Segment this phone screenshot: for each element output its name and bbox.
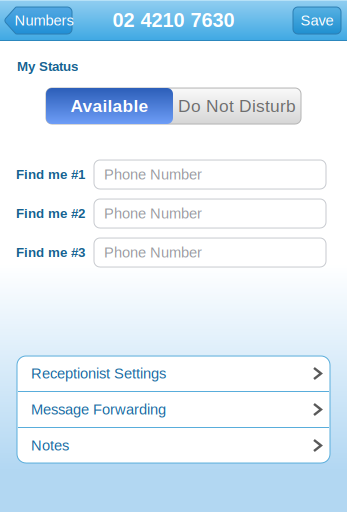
button[interactable]: Receptionist Settings <box>17 356 330 391</box>
staticText: Available <box>70 96 148 116</box>
button[interactable]: Notes <box>17 428 330 463</box>
button[interactable]: Available <box>46 88 173 124</box>
staticText: Numbers <box>14 12 73 29</box>
staticText: Phone Number <box>104 166 202 183</box>
staticText: Do Not Disturb <box>178 96 296 116</box>
staticText: Save <box>300 12 333 29</box>
staticText: Find me #2 <box>16 206 85 221</box>
button[interactable]: Message Forwarding <box>17 392 330 427</box>
button[interactable]: Phone Number <box>94 199 326 228</box>
staticText: My Status <box>17 59 78 74</box>
staticText: Find me #3 <box>16 245 85 260</box>
staticText: Phone Number <box>104 205 202 222</box>
staticText: Receptionist Settings <box>31 365 166 382</box>
button[interactable]: Do Not Disturb <box>173 88 301 124</box>
button[interactable]: Phone Number <box>94 238 326 267</box>
staticText: Find me #1 <box>16 167 85 182</box>
button[interactable]: Numbers <box>4 7 72 34</box>
staticText: Notes <box>31 437 69 454</box>
button[interactable]: Phone Number <box>94 160 326 189</box>
button[interactable]: Save <box>293 7 341 34</box>
staticText: 02 4210 7630 <box>112 9 234 31</box>
staticText: Phone Number <box>104 244 202 261</box>
staticText: Message Forwarding <box>31 401 166 418</box>
